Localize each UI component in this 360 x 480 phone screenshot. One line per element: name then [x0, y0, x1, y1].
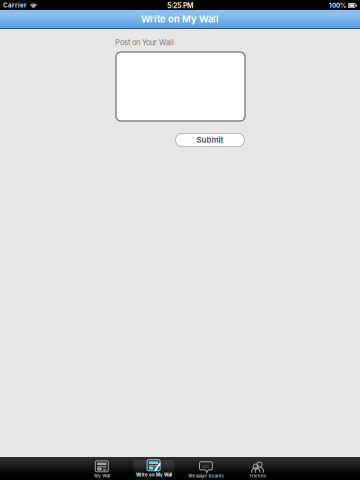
staticText: Submit [196, 135, 223, 145]
staticText: Friends [250, 473, 266, 479]
button[interactable]: Submit [175, 133, 244, 146]
staticText: My Wall [94, 473, 110, 479]
staticText: 100% [329, 2, 346, 9]
staticText: Write on My Wall [136, 472, 172, 477]
staticText: Carrier [3, 1, 26, 9]
button[interactable]: Friends [232, 457, 284, 480]
staticText: Post on Your Wall [115, 38, 174, 47]
button[interactable]: Message Boards [180, 457, 232, 480]
button[interactable]: My Wall [76, 457, 128, 480]
staticText: 5:25 PM [167, 1, 193, 10]
staticText: Message Boards [188, 473, 223, 479]
staticText: Write on My Wall [141, 14, 219, 25]
button[interactable]: Write on My Wall [128, 457, 180, 480]
